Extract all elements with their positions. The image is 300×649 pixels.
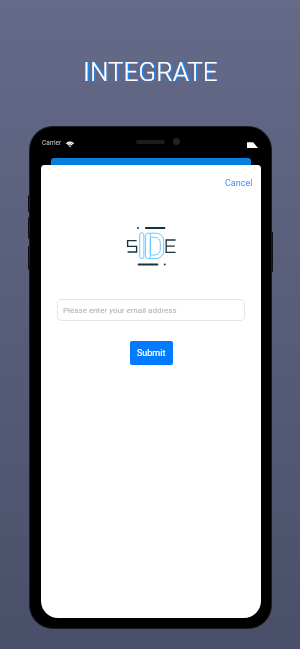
other: SIDE logo (127, 227, 176, 266)
button[interactable]: Please enter your email address (57, 299, 245, 321)
staticText: Please enter your email address (63, 306, 177, 315)
button[interactable]: Cancel (213, 165, 261, 197)
button[interactable]: Submit (130, 341, 173, 365)
staticText: INTEGRATE (83, 57, 218, 87)
staticText: Carrier (42, 139, 62, 147)
staticText: Cancel (225, 178, 253, 189)
staticText: INTEGRATE (85, 57, 220, 87)
staticText: Submit (137, 348, 166, 359)
